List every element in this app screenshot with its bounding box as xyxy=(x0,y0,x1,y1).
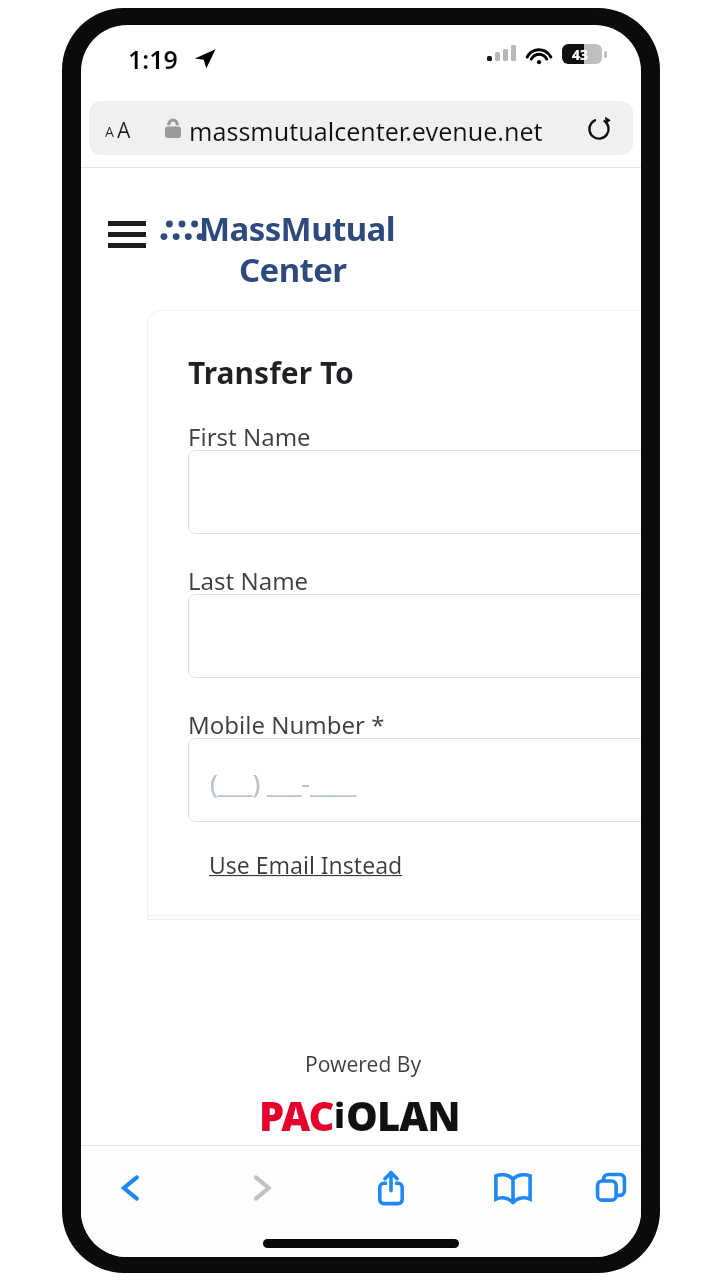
button[interactable] xyxy=(188,450,641,534)
button[interactable]: A xyxy=(89,101,633,155)
staticText: Mobile Number * xyxy=(188,708,385,741)
staticText: (___) ___-____ xyxy=(210,765,357,800)
staticText: 43 xyxy=(572,45,589,64)
staticText: i xyxy=(334,1092,346,1138)
button[interactable]: (___) ___-____ xyxy=(188,738,641,822)
staticText: A xyxy=(117,116,131,145)
staticText: First Name xyxy=(188,420,311,453)
button[interactable]: Tabs xyxy=(579,1159,641,1217)
other: Reload xyxy=(587,116,611,140)
staticText: Last Name xyxy=(188,564,309,597)
staticText: © 2024 Paciolan xyxy=(289,1145,441,1172)
staticText: OLAN xyxy=(346,1088,460,1142)
staticText: 1:19 xyxy=(128,42,178,76)
staticText: Transfer To xyxy=(188,352,354,393)
staticText: A xyxy=(105,122,114,141)
button[interactable] xyxy=(188,594,641,678)
staticText: MassMutual xyxy=(199,206,395,251)
staticText: Use Email Instead xyxy=(209,849,403,880)
staticText: Powered By xyxy=(305,1050,422,1079)
staticText: Center xyxy=(239,247,347,292)
button[interactable]: Menu xyxy=(99,213,155,261)
button[interactable]: Back xyxy=(99,1159,163,1217)
button[interactable]: Share xyxy=(359,1159,423,1217)
button[interactable]: Bookmarks xyxy=(481,1159,545,1217)
button[interactable]: Forward xyxy=(229,1159,293,1217)
staticText: PAC xyxy=(259,1088,334,1142)
button[interactable]: Use Email Instead xyxy=(203,845,409,884)
staticText: massmutualcenter.evenue.net xyxy=(189,114,543,148)
